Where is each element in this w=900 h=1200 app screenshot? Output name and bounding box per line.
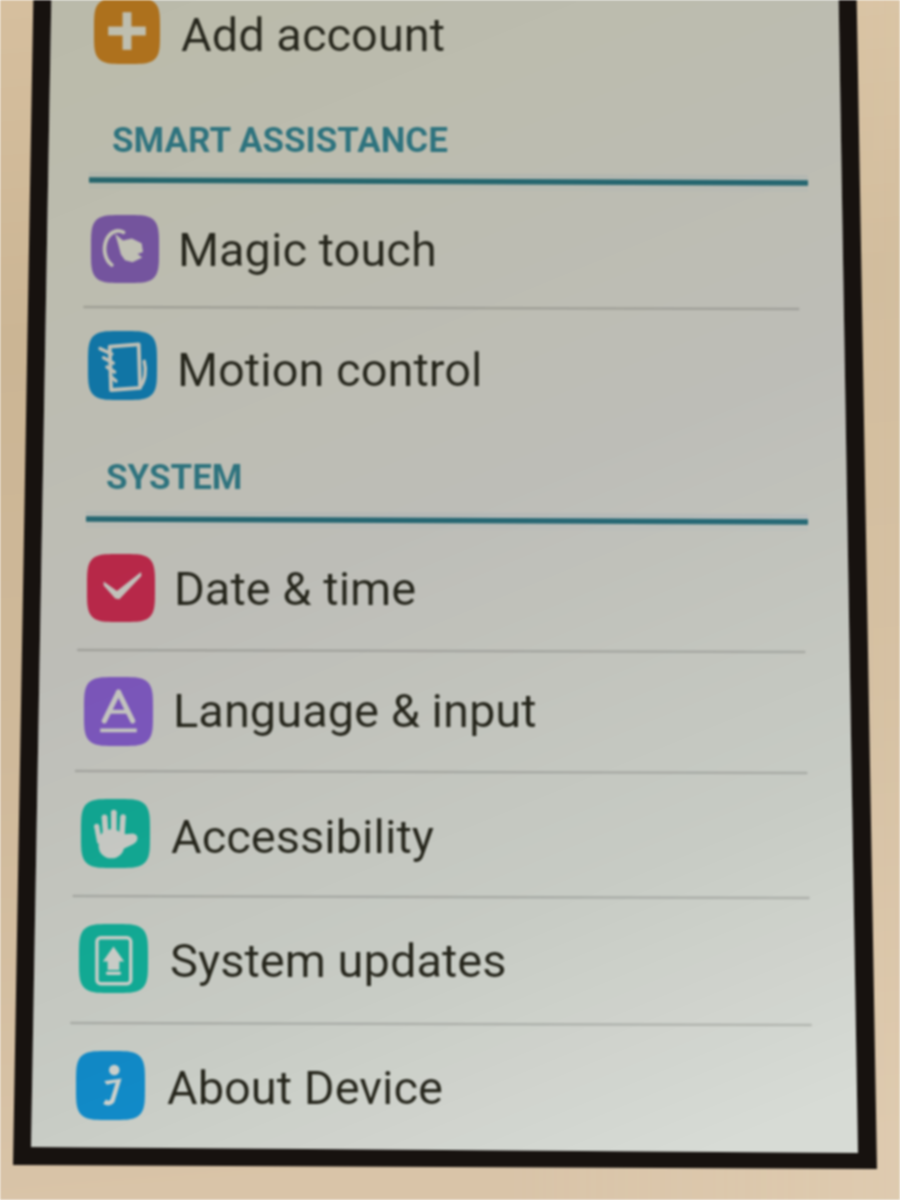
staticText: About Device xyxy=(167,1060,443,1115)
staticText: Add account xyxy=(181,7,446,62)
button[interactable]: System updates xyxy=(170,933,507,988)
staticText: SYSTEM xyxy=(106,457,243,498)
button[interactable]: About Device xyxy=(167,1060,443,1115)
staticText: Motion control xyxy=(177,342,483,397)
staticText: Accessibility xyxy=(171,809,435,864)
button[interactable]: SMART ASSISTANCE xyxy=(112,120,448,161)
button[interactable]: SYSTEM xyxy=(106,457,243,498)
staticText: SMART ASSISTANCE xyxy=(112,120,448,161)
button[interactable]: Add account xyxy=(181,7,446,62)
staticText: System updates xyxy=(170,933,507,988)
staticText: Language & input xyxy=(173,683,537,738)
button[interactable]: Language & input xyxy=(173,683,537,738)
staticText: Magic touch xyxy=(178,222,437,277)
button[interactable]: Motion control xyxy=(177,342,483,397)
button[interactable]: Magic touch xyxy=(178,222,437,277)
button[interactable]: Accessibility xyxy=(171,809,435,864)
staticText: Date & time xyxy=(174,561,417,616)
button[interactable]: Date & time xyxy=(174,561,417,616)
